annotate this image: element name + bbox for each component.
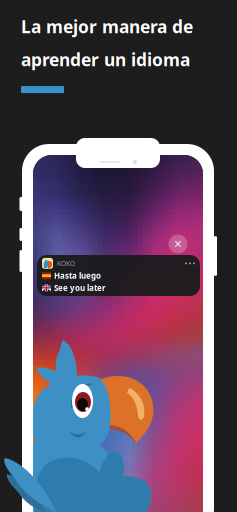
staticText: aprender un idioma [21,48,190,71]
button[interactable]: KOKO [37,255,200,296]
staticText: ✕ [173,238,182,250]
staticText: See you later [54,282,106,293]
staticText: KOKO [57,259,75,268]
button[interactable]: Close notification [167,233,189,255]
staticText: La mejor manera de [21,15,193,38]
staticText: Hasta luego [54,270,101,281]
